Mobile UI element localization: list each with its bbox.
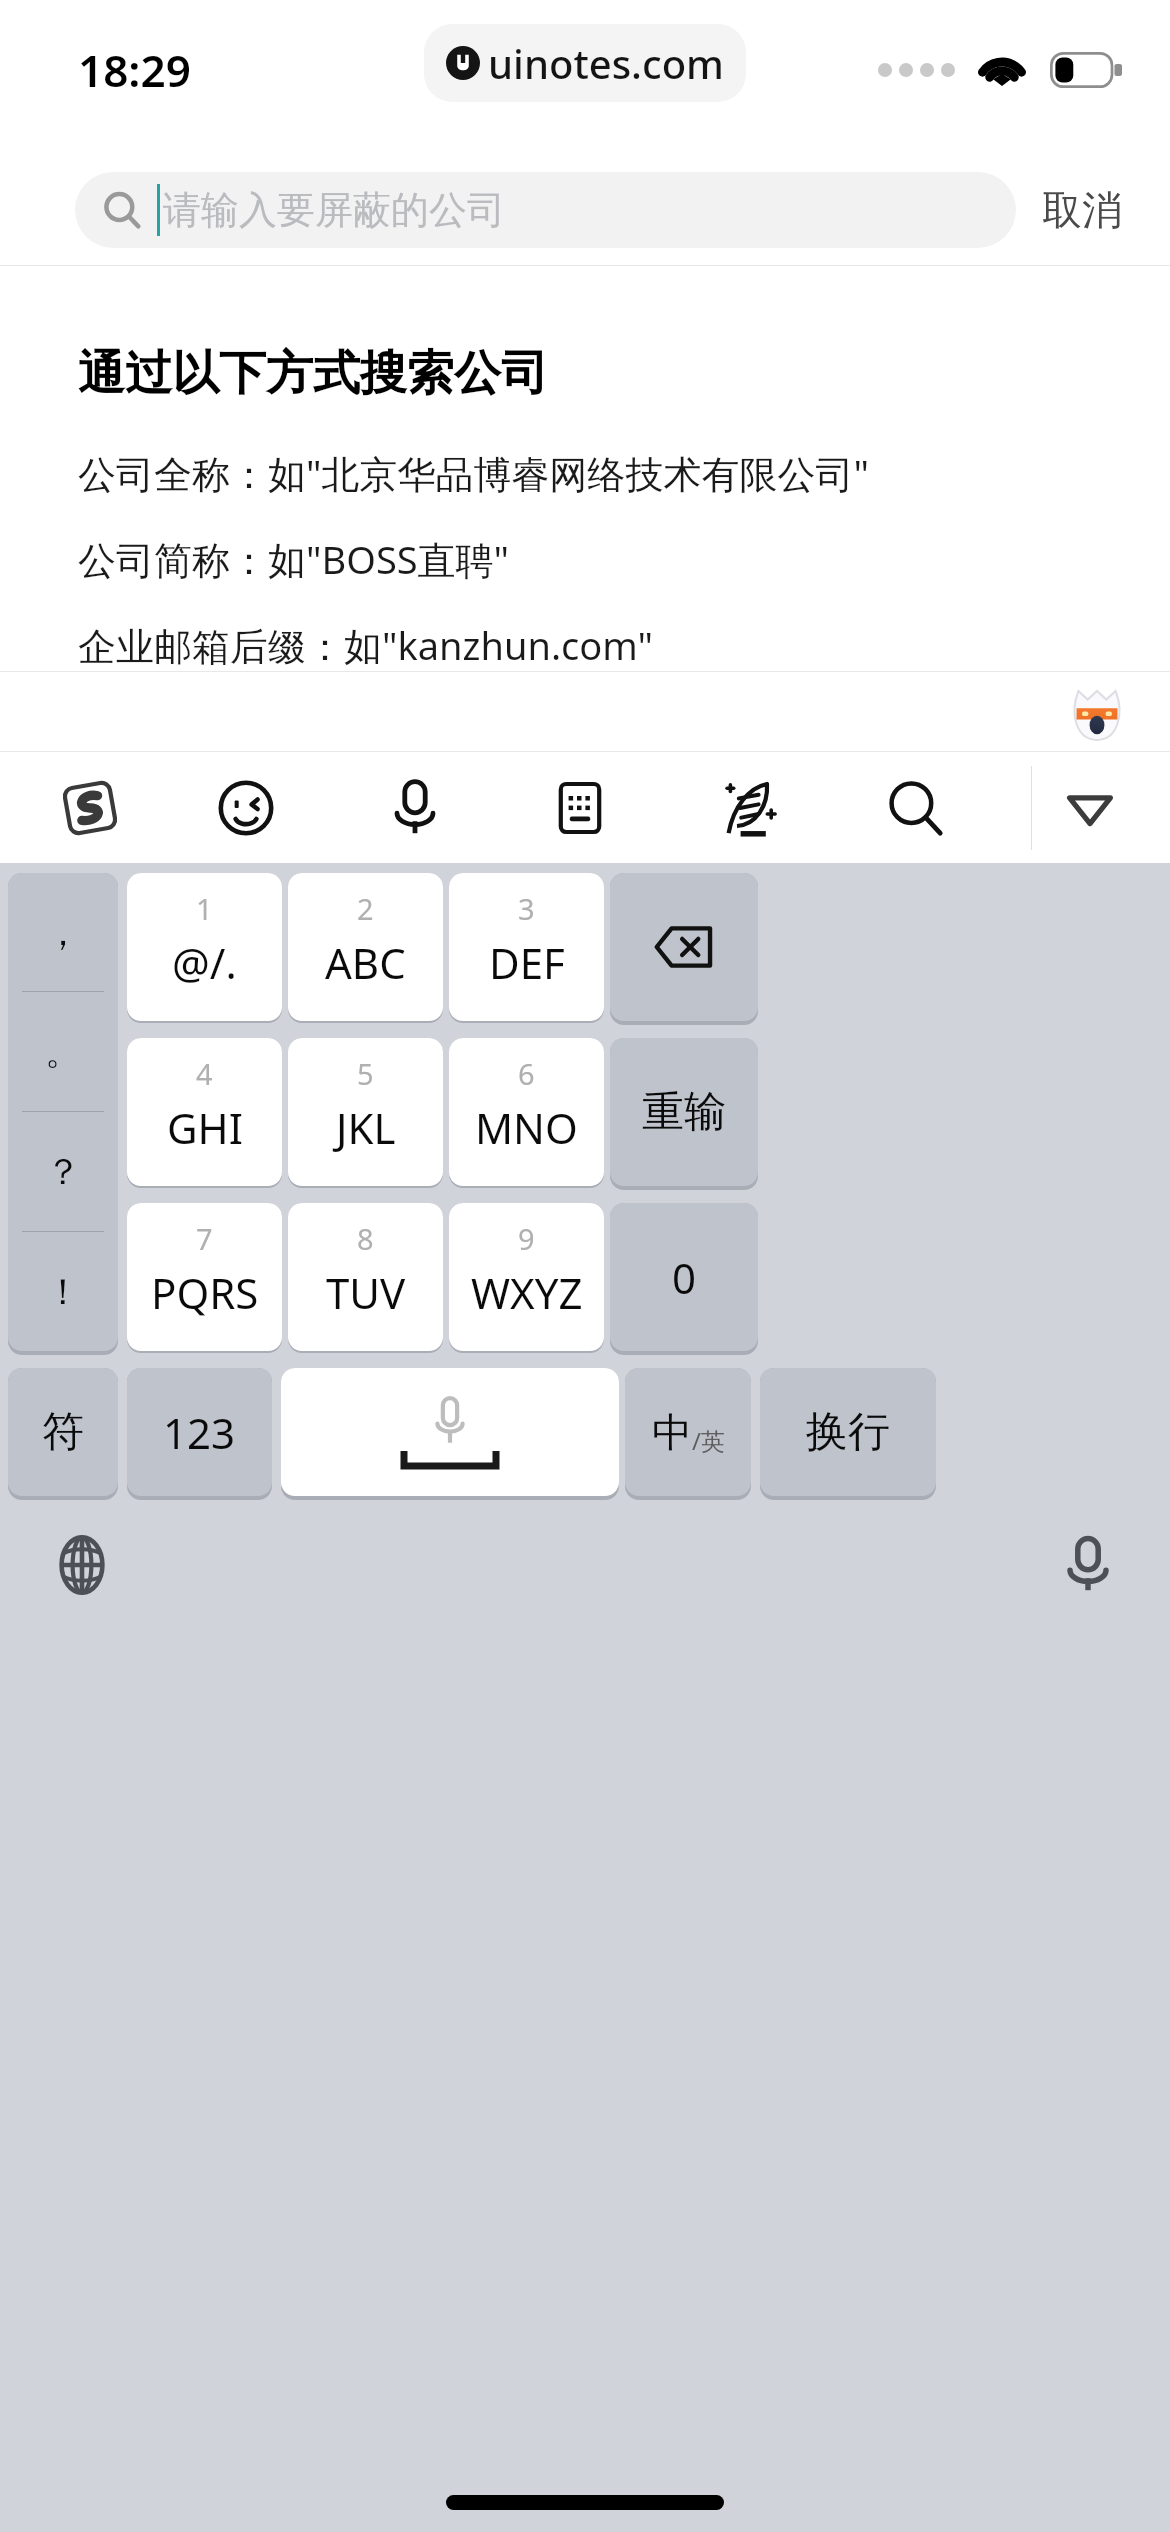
button[interactable]: 6 <box>449 1038 604 1193</box>
button[interactable]: 换行 <box>760 1368 936 1503</box>
button[interactable]: Space <box>281 1368 619 1503</box>
button[interactable]: Hide keyboard <box>1052 770 1128 846</box>
button[interactable]: 中 <box>625 1368 751 1503</box>
staticText: PQRS <box>151 1264 259 1321</box>
staticText: 4 <box>196 1054 213 1093</box>
button[interactable]: Change language <box>52 1535 112 1595</box>
staticText: 取消 <box>1042 185 1122 235</box>
staticText: 9 <box>518 1219 535 1258</box>
button[interactable]: 7 <box>127 1203 282 1358</box>
button[interactable]: 符 <box>8 1368 118 1503</box>
button[interactable]: 请输入要屏蔽的公司 <box>75 172 1016 248</box>
staticText: ABC <box>325 934 406 991</box>
staticText: 2 <box>357 889 374 928</box>
button[interactable]: Keyboard layout <box>542 770 618 846</box>
button[interactable]: 2 <box>288 873 443 1028</box>
staticText: 123 <box>163 1404 236 1461</box>
staticText: 6 <box>518 1054 535 1093</box>
staticText: ？ <box>45 1149 81 1194</box>
staticText: ！ <box>45 1269 81 1314</box>
button[interactable]: 0 <box>610 1203 758 1358</box>
staticText: 换行 <box>806 1406 890 1459</box>
staticText: 3 <box>518 889 535 928</box>
staticText: @/. <box>172 934 237 991</box>
button[interactable]: 重输 <box>610 1038 758 1193</box>
button[interactable]: 3 <box>449 873 604 1028</box>
button[interactable]: 9 <box>449 1203 604 1358</box>
staticText: MNO <box>475 1099 578 1156</box>
button[interactable]: Sogou <box>52 770 128 846</box>
staticText: 1 <box>196 889 213 928</box>
staticText: 通过以下方式搜索公司 <box>78 344 548 403</box>
staticText: 请输入要屏蔽的公司 <box>163 186 505 234</box>
button[interactable]: Assistant <box>1066 681 1128 743</box>
button[interactable]: 取消 <box>1016 171 1128 249</box>
staticText: 8 <box>357 1219 374 1258</box>
staticText: GHI <box>167 1099 243 1156</box>
staticText: JKL <box>336 1099 396 1156</box>
staticText: 重输 <box>642 1086 726 1139</box>
button[interactable]: Handwriting <box>711 770 787 846</box>
button[interactable]: ， <box>8 873 118 1358</box>
staticText: 企业邮箱后缀：如"kanzhun.com" <box>78 619 653 671</box>
button[interactable]: Voice input <box>377 770 453 846</box>
button[interactable]: 123 <box>127 1368 272 1503</box>
staticText: 中 <box>652 1407 692 1457</box>
staticText: 公司全称：如"北京华品博睿网络技术有限公司" <box>78 447 870 499</box>
button[interactable]: Emoji <box>208 770 284 846</box>
staticText: 。 <box>45 1029 81 1074</box>
button[interactable]: 5 <box>288 1038 443 1193</box>
staticText: uinotes.com <box>488 36 724 90</box>
staticText: WXYZ <box>471 1264 583 1321</box>
staticText: 公司简称：如"BOSS直聘" <box>78 533 510 585</box>
staticText: ， <box>45 910 81 955</box>
staticText: TUV <box>326 1264 406 1321</box>
button[interactable]: 8 <box>288 1203 443 1358</box>
staticText: 0 <box>672 1249 697 1306</box>
button[interactable]: Backspace <box>610 873 758 1028</box>
button[interactable]: Dictation <box>1058 1535 1118 1595</box>
staticText: 5 <box>357 1054 374 1093</box>
button[interactable]: 1 <box>127 873 282 1028</box>
staticText: DEF <box>489 934 565 991</box>
button[interactable]: 4 <box>127 1038 282 1193</box>
staticText: 18:29 <box>78 40 191 100</box>
staticText: /英 <box>692 1424 725 1457</box>
staticText: 符 <box>42 1406 84 1459</box>
button[interactable]: Search <box>877 770 953 846</box>
staticText: 7 <box>196 1219 213 1258</box>
